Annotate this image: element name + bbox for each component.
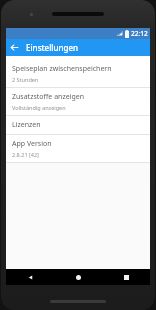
button[interactable]: Back <box>6 39 23 56</box>
button[interactable]: Lizenzen <box>6 116 150 134</box>
staticText: 2 Stunden <box>12 76 39 83</box>
button[interactable]: Speiseplan zwischenspeichern <box>6 60 150 87</box>
staticText: Zusatzstoffe anzeigen <box>12 92 85 102</box>
staticText: Einstellungen <box>26 42 79 53</box>
button[interactable]: Home <box>54 269 102 285</box>
staticText: Vollständig anzeigen <box>12 104 66 111</box>
staticText: Lizenzen <box>12 120 41 130</box>
button[interactable]: Recent apps <box>102 269 150 285</box>
button[interactable]: Back <box>6 269 54 285</box>
staticText: 22:12 <box>131 29 148 38</box>
staticText: 2.8.21 [42] <box>12 151 39 158</box>
staticText: App Version <box>12 139 52 149</box>
button[interactable]: Zusatzstoffe anzeigen <box>6 88 150 115</box>
staticText: Speiseplan zwischenspeichern <box>12 64 112 74</box>
button[interactable]: App Version <box>6 135 150 162</box>
